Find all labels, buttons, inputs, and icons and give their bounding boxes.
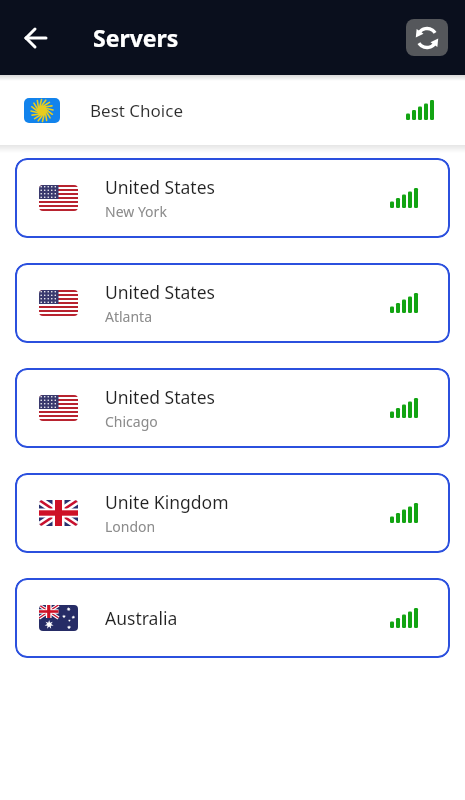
staticText: Servers — [93, 22, 179, 53]
staticText: Chicago — [105, 412, 158, 431]
staticText: Australia — [105, 606, 178, 630]
staticText: United States — [105, 280, 215, 304]
button[interactable]: Australia — [15, 578, 450, 658]
button[interactable] — [24, 26, 48, 50]
button[interactable] — [406, 19, 448, 56]
button[interactable]: United States — [15, 368, 450, 448]
button[interactable]: United States — [15, 263, 450, 343]
staticText: Best Choice — [90, 99, 184, 122]
button[interactable]: Best Choice — [0, 75, 465, 145]
staticText: United States — [105, 175, 215, 199]
button[interactable]: United States — [15, 158, 450, 238]
staticText: Unite Kingdom — [105, 490, 229, 514]
staticText: New York — [105, 202, 167, 221]
button[interactable]: Unite Kingdom — [15, 473, 450, 553]
staticText: London — [105, 517, 156, 536]
staticText: United States — [105, 385, 215, 409]
staticText: Atlanta — [105, 307, 153, 326]
